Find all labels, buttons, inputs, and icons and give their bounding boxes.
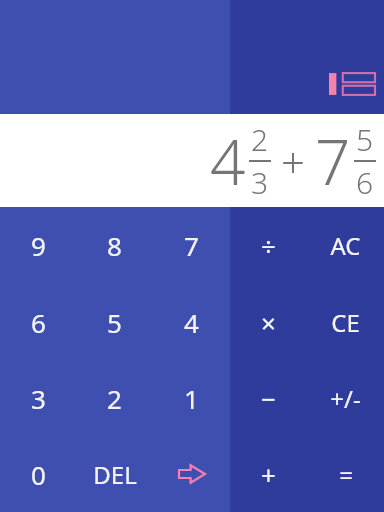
button[interactable]: +/-: [307, 360, 384, 436]
staticText: 1: [184, 381, 199, 416]
button[interactable]: CE: [307, 284, 384, 360]
staticText: 2: [251, 119, 269, 160]
staticText: 4: [184, 305, 199, 340]
staticText: 7: [184, 228, 199, 263]
staticText: 9: [31, 228, 46, 263]
button[interactable]: 2: [76, 360, 153, 436]
staticText: CE: [331, 306, 360, 339]
button[interactable]: 4: [153, 284, 230, 360]
staticText: 3: [251, 162, 269, 203]
button[interactable]: −: [230, 360, 307, 436]
button[interactable]: AC: [307, 207, 384, 284]
staticText: 2: [107, 381, 122, 416]
staticText: 5: [356, 119, 374, 160]
button[interactable]: ÷: [230, 207, 307, 284]
staticText: +/-: [330, 382, 361, 415]
button[interactable]: 8: [76, 207, 153, 284]
button[interactable]: 6: [0, 284, 76, 360]
staticText: DEL: [93, 458, 137, 491]
staticText: =: [339, 458, 353, 491]
staticText: +: [261, 457, 276, 492]
button[interactable]: 7: [153, 207, 230, 284]
staticText: ×: [261, 305, 276, 340]
button[interactable]: 0: [0, 436, 76, 512]
button[interactable]: 9: [0, 207, 76, 284]
staticText: AC: [330, 229, 361, 262]
button[interactable]: DEL: [76, 436, 153, 512]
staticText: 4: [210, 119, 246, 203]
staticText: 5: [107, 305, 122, 340]
button[interactable]: Next expression: [153, 436, 230, 512]
button[interactable]: ×: [230, 284, 307, 360]
staticText: 7: [315, 119, 351, 203]
button[interactable]: 1: [153, 360, 230, 436]
button[interactable]: 5: [76, 284, 153, 360]
button[interactable]: =: [307, 436, 384, 512]
staticText: 6: [356, 162, 374, 203]
staticText: 8: [107, 228, 122, 263]
staticText: 3: [31, 381, 46, 416]
staticText: −: [261, 381, 276, 416]
button[interactable]: 3: [0, 360, 76, 436]
staticText: ÷: [261, 228, 276, 263]
staticText: 0: [31, 457, 46, 492]
button[interactable]: +: [230, 436, 307, 512]
staticText: 6: [31, 305, 46, 340]
staticText: +: [281, 133, 305, 190]
button[interactable]: Fraction display mode: [328, 68, 376, 100]
